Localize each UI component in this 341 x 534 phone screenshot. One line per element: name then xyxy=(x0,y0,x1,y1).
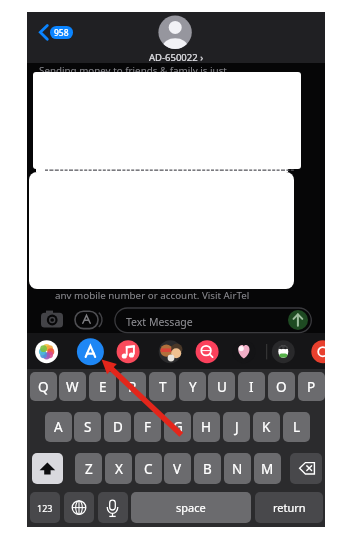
button[interactable]: 123 xyxy=(30,492,60,523)
staticText: N xyxy=(232,460,243,478)
button[interactable]: C xyxy=(135,453,162,484)
button[interactable]: W xyxy=(59,372,86,401)
staticText: D xyxy=(113,418,123,436)
staticText: S xyxy=(84,418,92,436)
button[interactable]: R xyxy=(119,372,146,401)
staticText: M xyxy=(261,460,274,478)
staticText: W xyxy=(66,378,79,396)
staticText: 958 xyxy=(54,27,69,39)
button[interactable]: return xyxy=(255,492,323,523)
button[interactable]: I xyxy=(238,372,265,401)
button[interactable] xyxy=(288,310,308,330)
button[interactable]: F xyxy=(134,412,161,442)
staticText: X xyxy=(115,460,123,478)
staticText: 123 xyxy=(37,502,53,514)
button[interactable]: L xyxy=(283,412,310,442)
button[interactable]: Z xyxy=(75,453,102,484)
button[interactable]: H xyxy=(193,412,220,442)
staticText: F xyxy=(144,418,152,436)
staticText: Z xyxy=(85,460,93,478)
button[interactable]: G xyxy=(164,412,191,442)
button[interactable]: 958 xyxy=(50,26,73,39)
staticText: B xyxy=(203,460,212,478)
button[interactable]: D xyxy=(104,412,131,442)
staticText: V xyxy=(173,460,182,478)
staticText: T xyxy=(159,378,167,396)
button[interactable] xyxy=(64,492,94,523)
button[interactable]: space xyxy=(131,492,251,523)
button[interactable]: A xyxy=(45,412,72,442)
staticText: return xyxy=(273,500,306,515)
button[interactable]: O xyxy=(268,372,295,401)
button[interactable]: P xyxy=(298,372,325,401)
button[interactable]: Y xyxy=(179,372,206,401)
staticText: Y xyxy=(189,378,197,396)
staticText: O xyxy=(276,378,287,396)
staticText: I xyxy=(249,378,254,396)
staticText: R xyxy=(128,378,137,396)
staticText: AD-650022 › xyxy=(149,51,204,64)
staticText: U xyxy=(217,378,227,396)
staticText: space xyxy=(176,500,206,515)
button[interactable] xyxy=(32,453,63,484)
staticText: G xyxy=(173,418,183,436)
staticText: L xyxy=(293,418,301,436)
button[interactable]: Q xyxy=(30,372,57,401)
staticText: anv mobile number or account. Visit AirT… xyxy=(55,289,250,302)
staticText: Sending money to friends & family is jus… xyxy=(39,64,227,77)
button[interactable]: X xyxy=(105,453,132,484)
staticText: E xyxy=(99,378,107,396)
staticText: J xyxy=(235,418,239,436)
button[interactable]: N xyxy=(224,453,251,484)
button[interactable]: K xyxy=(253,412,280,442)
button[interactable]: S xyxy=(74,412,101,442)
button[interactable]: AD-650022 › xyxy=(27,51,325,64)
staticText: Text Message xyxy=(126,315,193,329)
button[interactable]: U xyxy=(208,372,235,401)
button[interactable]: M xyxy=(254,453,281,484)
button[interactable]: E xyxy=(89,372,116,401)
button[interactable]: Text Message xyxy=(115,308,311,333)
staticText: Q xyxy=(38,378,49,396)
button[interactable]: T xyxy=(149,372,176,401)
staticText: C xyxy=(144,460,153,478)
staticText: K xyxy=(262,418,271,436)
button[interactable]: V xyxy=(164,453,191,484)
staticText: P xyxy=(307,378,316,396)
button[interactable] xyxy=(27,12,325,63)
button[interactable]: B xyxy=(194,453,221,484)
button[interactable] xyxy=(290,453,322,484)
button[interactable]: J xyxy=(223,412,250,442)
staticText: A xyxy=(54,418,63,436)
button[interactable] xyxy=(98,492,128,523)
staticText: H xyxy=(201,418,212,436)
